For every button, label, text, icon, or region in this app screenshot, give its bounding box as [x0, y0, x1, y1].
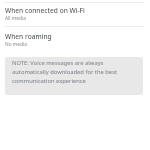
button[interactable]: When roaming [0, 32, 150, 56]
staticText: When roaming [5, 32, 52, 41]
staticText: NOTE: Voice messages are always automati… [12, 59, 135, 85]
button[interactable]: When connected on Wi-Fi [0, 6, 150, 30]
staticText: No media [5, 41, 27, 48]
staticText: All media [5, 15, 26, 22]
staticText: When connected on Wi-Fi [5, 6, 85, 15]
